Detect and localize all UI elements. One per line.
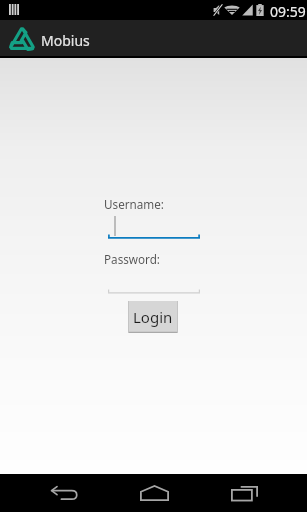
staticText: Mobius — [41, 31, 90, 50]
staticText: Login — [133, 307, 173, 327]
button[interactable]: Home — [128, 474, 180, 512]
button[interactable] — [108, 270, 200, 294]
button[interactable]: Recent apps — [218, 474, 270, 512]
staticText: Username: — [104, 196, 164, 212]
button[interactable]: Login — [128, 301, 178, 333]
staticText: Password: — [104, 251, 160, 267]
button[interactable]: Back — [38, 474, 90, 512]
staticText: 09:59 — [270, 2, 306, 21]
button[interactable] — [108, 215, 200, 239]
